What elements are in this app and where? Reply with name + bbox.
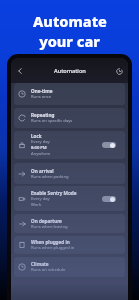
button[interactable]: Toggle bbox=[102, 196, 116, 202]
staticText: Repeating bbox=[31, 112, 55, 118]
staticText: Runs on specific days bbox=[31, 118, 73, 124]
staticText: Climate bbox=[31, 261, 49, 267]
button[interactable]: Back bbox=[13, 64, 27, 78]
staticText: your car bbox=[39, 31, 100, 51]
button[interactable]: One-time bbox=[14, 83, 125, 105]
staticText: Anywhere bbox=[31, 151, 51, 157]
staticText: Runs once bbox=[31, 94, 52, 100]
staticText: Runs when plugged in bbox=[31, 245, 75, 251]
staticText: Every day bbox=[31, 139, 50, 145]
button[interactable]: On arrival bbox=[14, 163, 125, 184]
button[interactable]: History bbox=[112, 64, 126, 78]
staticText: Every day bbox=[31, 196, 50, 202]
staticText: On departure bbox=[31, 218, 62, 224]
button[interactable]: Repeating bbox=[14, 108, 125, 128]
staticText: Work bbox=[31, 202, 42, 208]
staticText: Automate bbox=[33, 11, 107, 31]
staticText: 8:00 PM bbox=[31, 145, 47, 151]
staticText: Lock bbox=[31, 133, 42, 139]
button[interactable]: Lock bbox=[14, 131, 125, 159]
staticText: Runs when leaving bbox=[31, 224, 68, 230]
button[interactable]: When plugged in bbox=[14, 236, 125, 254]
staticText: On arrival bbox=[31, 168, 54, 174]
staticText: One-time bbox=[31, 88, 53, 94]
button[interactable]: Toggle bbox=[102, 142, 116, 148]
staticText: When plugged in bbox=[31, 239, 70, 245]
staticText: Runs when parking bbox=[31, 174, 69, 180]
button[interactable]: On departure bbox=[14, 214, 125, 233]
button[interactable]: Enable Sentry Mode bbox=[14, 186, 125, 211]
staticText: Enable Sentry Mode bbox=[31, 190, 77, 196]
staticText: Runs on schedule bbox=[31, 267, 66, 273]
staticText: Automation bbox=[54, 67, 86, 75]
button[interactable]: Climate bbox=[14, 257, 125, 277]
